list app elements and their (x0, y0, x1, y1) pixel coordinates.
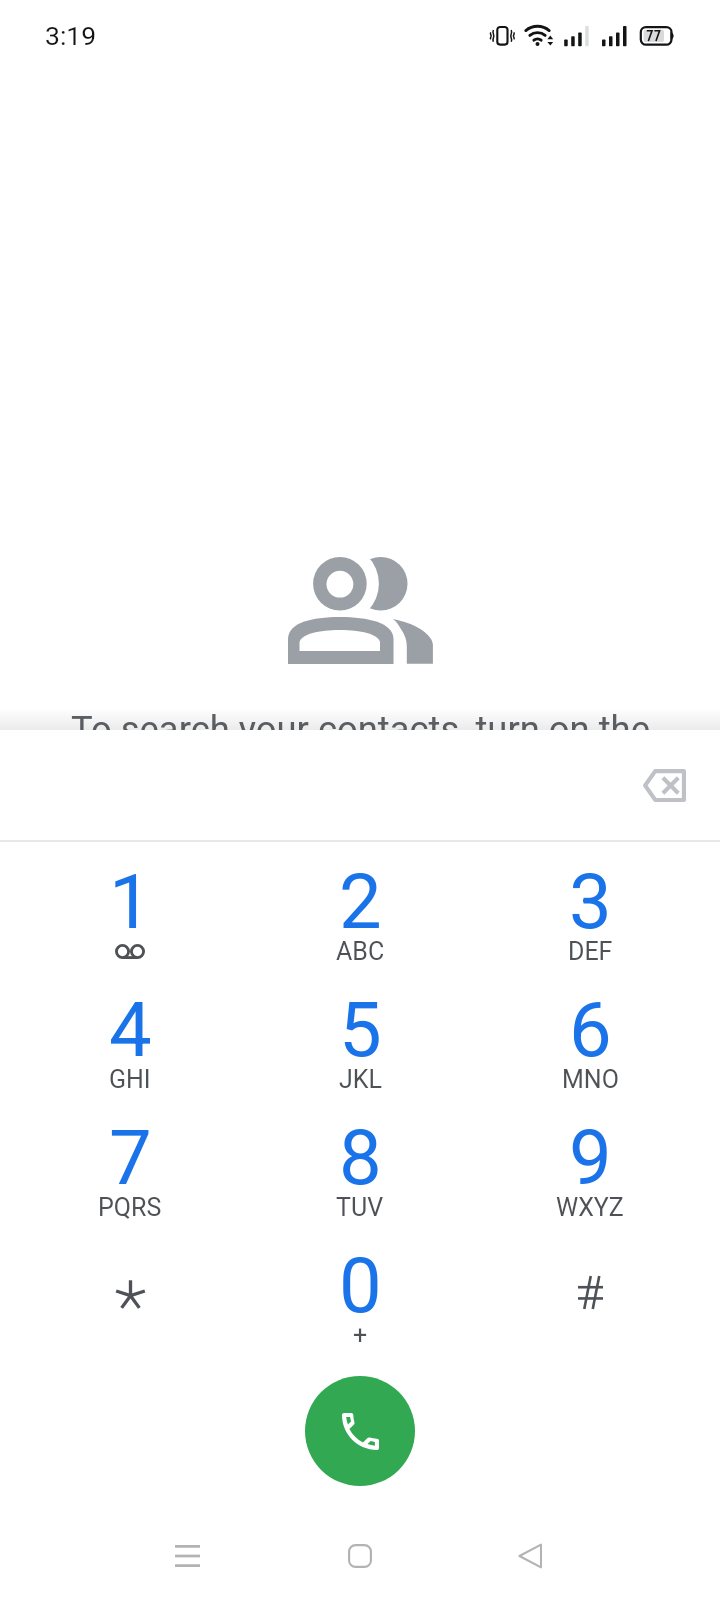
button[interactable]: Back (485, 1511, 575, 1600)
button[interactable]: 8 TUV (245, 1098, 475, 1226)
staticText: ABC (336, 937, 385, 966)
button[interactable]: Call (305, 1376, 415, 1486)
button[interactable]: 0 + (245, 1226, 475, 1354)
staticText: 0 (339, 1241, 382, 1330)
button[interactable]: 4 GHI (15, 970, 245, 1098)
button[interactable]: 9 WXYZ (475, 1098, 705, 1226)
button[interactable]: 1 voicemail (15, 842, 245, 970)
staticText: DEF (568, 937, 613, 966)
button[interactable]: Star (15, 1226, 245, 1354)
button[interactable]: 7 PQRS (15, 1098, 245, 1226)
staticText: WXYZ (556, 1193, 624, 1222)
staticText: TUV (336, 1193, 384, 1222)
staticText: 8 (339, 1113, 382, 1202)
staticText: To search your contacts, turn on the (71, 708, 650, 751)
button[interactable]: 2 ABC (245, 842, 475, 970)
staticText: 1 (109, 857, 152, 946)
staticText: PQRS (98, 1193, 162, 1222)
button[interactable]: 6 MNO (475, 970, 705, 1098)
staticText: + (353, 1321, 368, 1350)
button[interactable]: Recent apps (142, 1511, 232, 1600)
staticText: 6 (569, 985, 612, 1074)
button[interactable]: Home (315, 1511, 405, 1600)
button[interactable]: 3 DEF (475, 842, 705, 970)
staticText: 7 (109, 1113, 152, 1202)
button[interactable]: Backspace (612, 733, 716, 837)
staticText: 4 (109, 985, 152, 1074)
staticText: 2 (339, 857, 382, 946)
staticText: GHI (109, 1065, 151, 1094)
staticText: JKL (339, 1065, 382, 1094)
button[interactable]: 5 JKL (245, 970, 475, 1098)
staticText: 9 (569, 1113, 612, 1202)
staticText: 3:19 (45, 20, 97, 51)
staticText: 5 (339, 985, 382, 1074)
staticText: 3 (569, 857, 612, 946)
staticText: MNO (562, 1065, 619, 1094)
button[interactable]: Pound (475, 1226, 705, 1354)
